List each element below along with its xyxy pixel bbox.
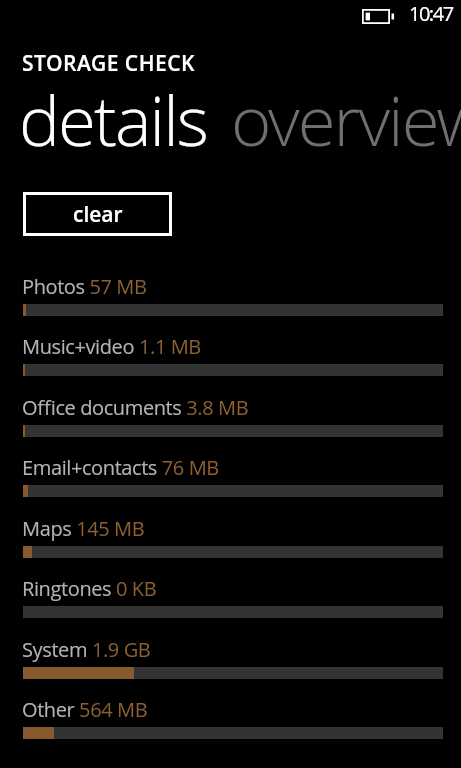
staticText: Photos 57 MB: [22, 273, 147, 300]
staticText: STORAGE CHECK: [22, 49, 195, 78]
staticText: Email+contacts 76 MB: [22, 454, 219, 481]
button[interactable]: Office documents 3.8 MB: [0, 393, 461, 446]
button[interactable]: Ringtones 0 KB: [0, 574, 461, 627]
staticText: Office documents 3.8 MB: [22, 394, 249, 421]
staticText: Other 564 MB: [22, 696, 148, 723]
button[interactable]: Music+video 1.1 MB: [0, 332, 461, 385]
button[interactable]: Maps 145 MB: [0, 514, 461, 567]
button[interactable]: Photos 57 MB: [0, 272, 461, 325]
other: Battery: [362, 9, 394, 24]
button[interactable]: clear: [23, 192, 172, 236]
staticText: Music+video 1.1 MB: [22, 333, 201, 360]
button[interactable]: System 1.9 GB: [0, 635, 461, 688]
staticText: 10:47: [409, 0, 453, 27]
staticText: overview: [231, 72, 461, 166]
staticText: clear: [73, 200, 123, 229]
button[interactable]: overview: [231, 72, 461, 166]
staticText: System 1.9 GB: [22, 636, 151, 663]
button[interactable]: Other 564 MB: [0, 695, 461, 748]
button[interactable]: Email+contacts 76 MB: [0, 453, 461, 506]
staticText: Ringtones 0 KB: [22, 575, 157, 602]
button[interactable]: details: [19, 72, 207, 166]
staticText: details: [19, 72, 207, 166]
staticText: Maps 145 MB: [22, 515, 145, 542]
